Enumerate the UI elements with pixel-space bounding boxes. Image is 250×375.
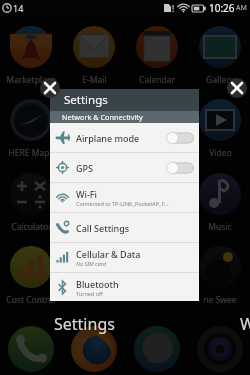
staticText: Settings [54, 313, 115, 335]
staticText: Video [209, 147, 232, 159]
staticText: Cost Control [6, 294, 56, 306]
button[interactable] [126, 169, 188, 233]
button[interactable]: Close [227, 78, 247, 98]
button[interactable]: Video [189, 95, 250, 159]
button[interactable]: Call Settings [50, 213, 199, 242]
button[interactable] [126, 242, 188, 306]
staticText: ne Swee [203, 294, 237, 306]
button[interactable] [63, 95, 125, 159]
button[interactable] [63, 242, 125, 306]
staticText: Gallery [206, 74, 234, 86]
button[interactable] [126, 95, 188, 159]
button[interactable]: Airplane mode toggle [167, 132, 194, 144]
staticText: Wi-Fi [76, 188, 97, 200]
staticText: No SIM card [76, 260, 106, 267]
staticText: Network & Connectivity [62, 112, 143, 122]
button[interactable]: Marketplace [0, 22, 62, 86]
button[interactable]: App [71, 326, 117, 372]
staticText: HERE Maps [8, 147, 54, 159]
staticText: E-Mail [82, 74, 107, 86]
staticText: Cellular & Data [76, 248, 141, 260]
staticText: GPS [76, 162, 93, 174]
staticText: 14 [13, 2, 24, 14]
staticText: Airplane mode [76, 132, 140, 144]
button[interactable]: Cellular & Data [50, 243, 199, 272]
button[interactable]: Bluetooth [50, 273, 199, 301]
staticText: W [240, 313, 250, 335]
button[interactable]: Calculator [0, 169, 62, 233]
button[interactable]: Gallery [189, 22, 250, 86]
staticText: Connected to TP-LINK_PocketAP_F... [76, 200, 169, 207]
button[interactable]: Wi-Fi [50, 183, 199, 212]
button[interactable]: App [134, 326, 180, 372]
button[interactable]: HERE Maps [0, 95, 62, 159]
staticText: Turned off [76, 290, 103, 297]
button[interactable]: Cost Control [0, 242, 62, 306]
button[interactable]: GPS toggle [167, 162, 194, 174]
button[interactable]: E-Mail [63, 22, 125, 86]
staticText: Marketplace [6, 74, 56, 86]
staticText: Bluetooth [76, 278, 119, 290]
staticText: ! [172, 3, 175, 14]
button[interactable] [63, 169, 125, 233]
button[interactable]: ne Swee [189, 242, 250, 306]
staticText: Call Settings [76, 222, 130, 234]
button[interactable]: App [197, 326, 243, 372]
button[interactable]: App [8, 326, 54, 372]
button[interactable]: Music [189, 169, 250, 233]
staticText: 10:26 [209, 1, 235, 15]
button[interactable]: Calendar [126, 22, 188, 86]
button[interactable]: Airplane mode [50, 123, 199, 152]
button[interactable]: Close [40, 78, 60, 98]
staticText: Settings [64, 92, 108, 108]
button[interactable]: GPS [50, 153, 199, 182]
staticText: Calendar [139, 74, 175, 86]
staticText: Music [208, 221, 232, 233]
staticText: Calculator [11, 221, 52, 233]
staticText: AM [236, 3, 247, 13]
